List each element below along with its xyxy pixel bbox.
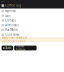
staticText: Americano <box>5 23 19 27</box>
staticText: Daily limit reached <box>2 36 27 39</box>
button[interactable]: Flat White <box>0 28 64 32</box>
staticText: Review history <box>16 44 25 52</box>
staticText: Latte <box>5 14 11 17</box>
staticText: Cortado <box>5 19 16 22</box>
button[interactable]: Latte <box>0 13 64 18</box>
button[interactable]: Cortado <box>0 18 64 23</box>
staticText: Coffee Log <box>5 4 21 7</box>
staticText: 9:41 <box>1 0 4 2</box>
button[interactable]: Add <box>2 46 13 50</box>
staticText: Flat White <box>5 28 18 32</box>
button[interactable]: Review history <box>14 46 37 50</box>
staticText: Add <box>5 46 11 50</box>
button[interactable]: Espresso <box>0 9 64 13</box>
staticText: Espresso <box>5 9 16 13</box>
staticText: Cold Brew <box>5 33 19 36</box>
button[interactable]: Cold Brew <box>0 32 64 37</box>
staticText: Try a decaf option <box>2 40 26 43</box>
button[interactable]: Americano <box>0 23 64 28</box>
